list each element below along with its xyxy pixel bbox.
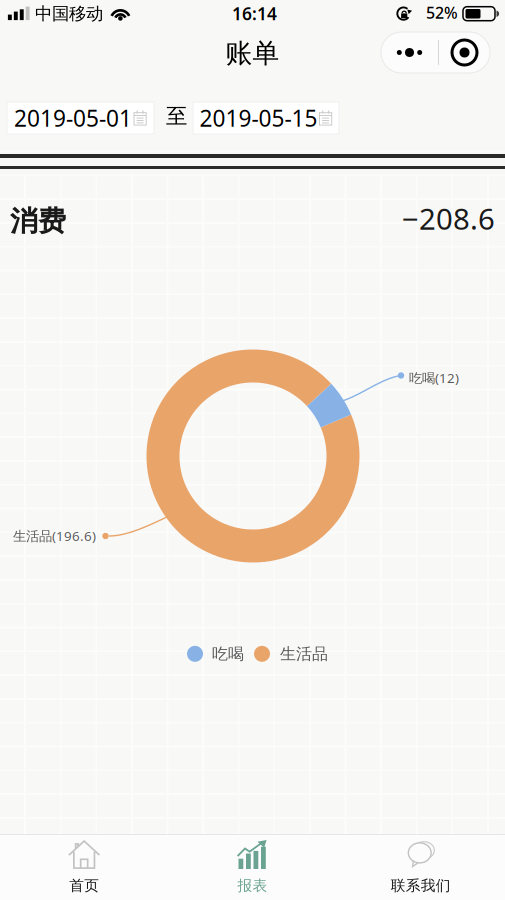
staticText: 报表: [237, 876, 267, 894]
button[interactable]: 2019-05-01: [7, 102, 154, 134]
staticText: 52%: [426, 2, 458, 23]
button[interactable]: More options: [381, 32, 490, 73]
staticText: 至: [166, 103, 187, 129]
staticText: 消费: [10, 204, 66, 238]
staticText: 账单: [225, 37, 279, 70]
button[interactable]: 联系我们: [337, 834, 505, 900]
staticText: 2019-05-15: [199, 103, 317, 133]
staticText: 生活品(196.6): [13, 527, 96, 545]
staticText: 2019-05-01: [14, 103, 132, 133]
staticText: 生活品: [280, 644, 328, 664]
staticText: 16:14: [232, 2, 277, 25]
staticText: 首页: [69, 876, 99, 894]
staticText: 吃喝(12): [409, 369, 459, 387]
button[interactable]: 首页: [0, 834, 168, 900]
button[interactable]: 2019-05-15: [193, 102, 339, 134]
button[interactable]: 报表: [168, 834, 337, 900]
staticText: 中国移动: [35, 3, 103, 24]
staticText: 吃喝: [212, 644, 244, 664]
staticText: −208.6: [402, 199, 495, 238]
staticText: 联系我们: [391, 876, 451, 894]
